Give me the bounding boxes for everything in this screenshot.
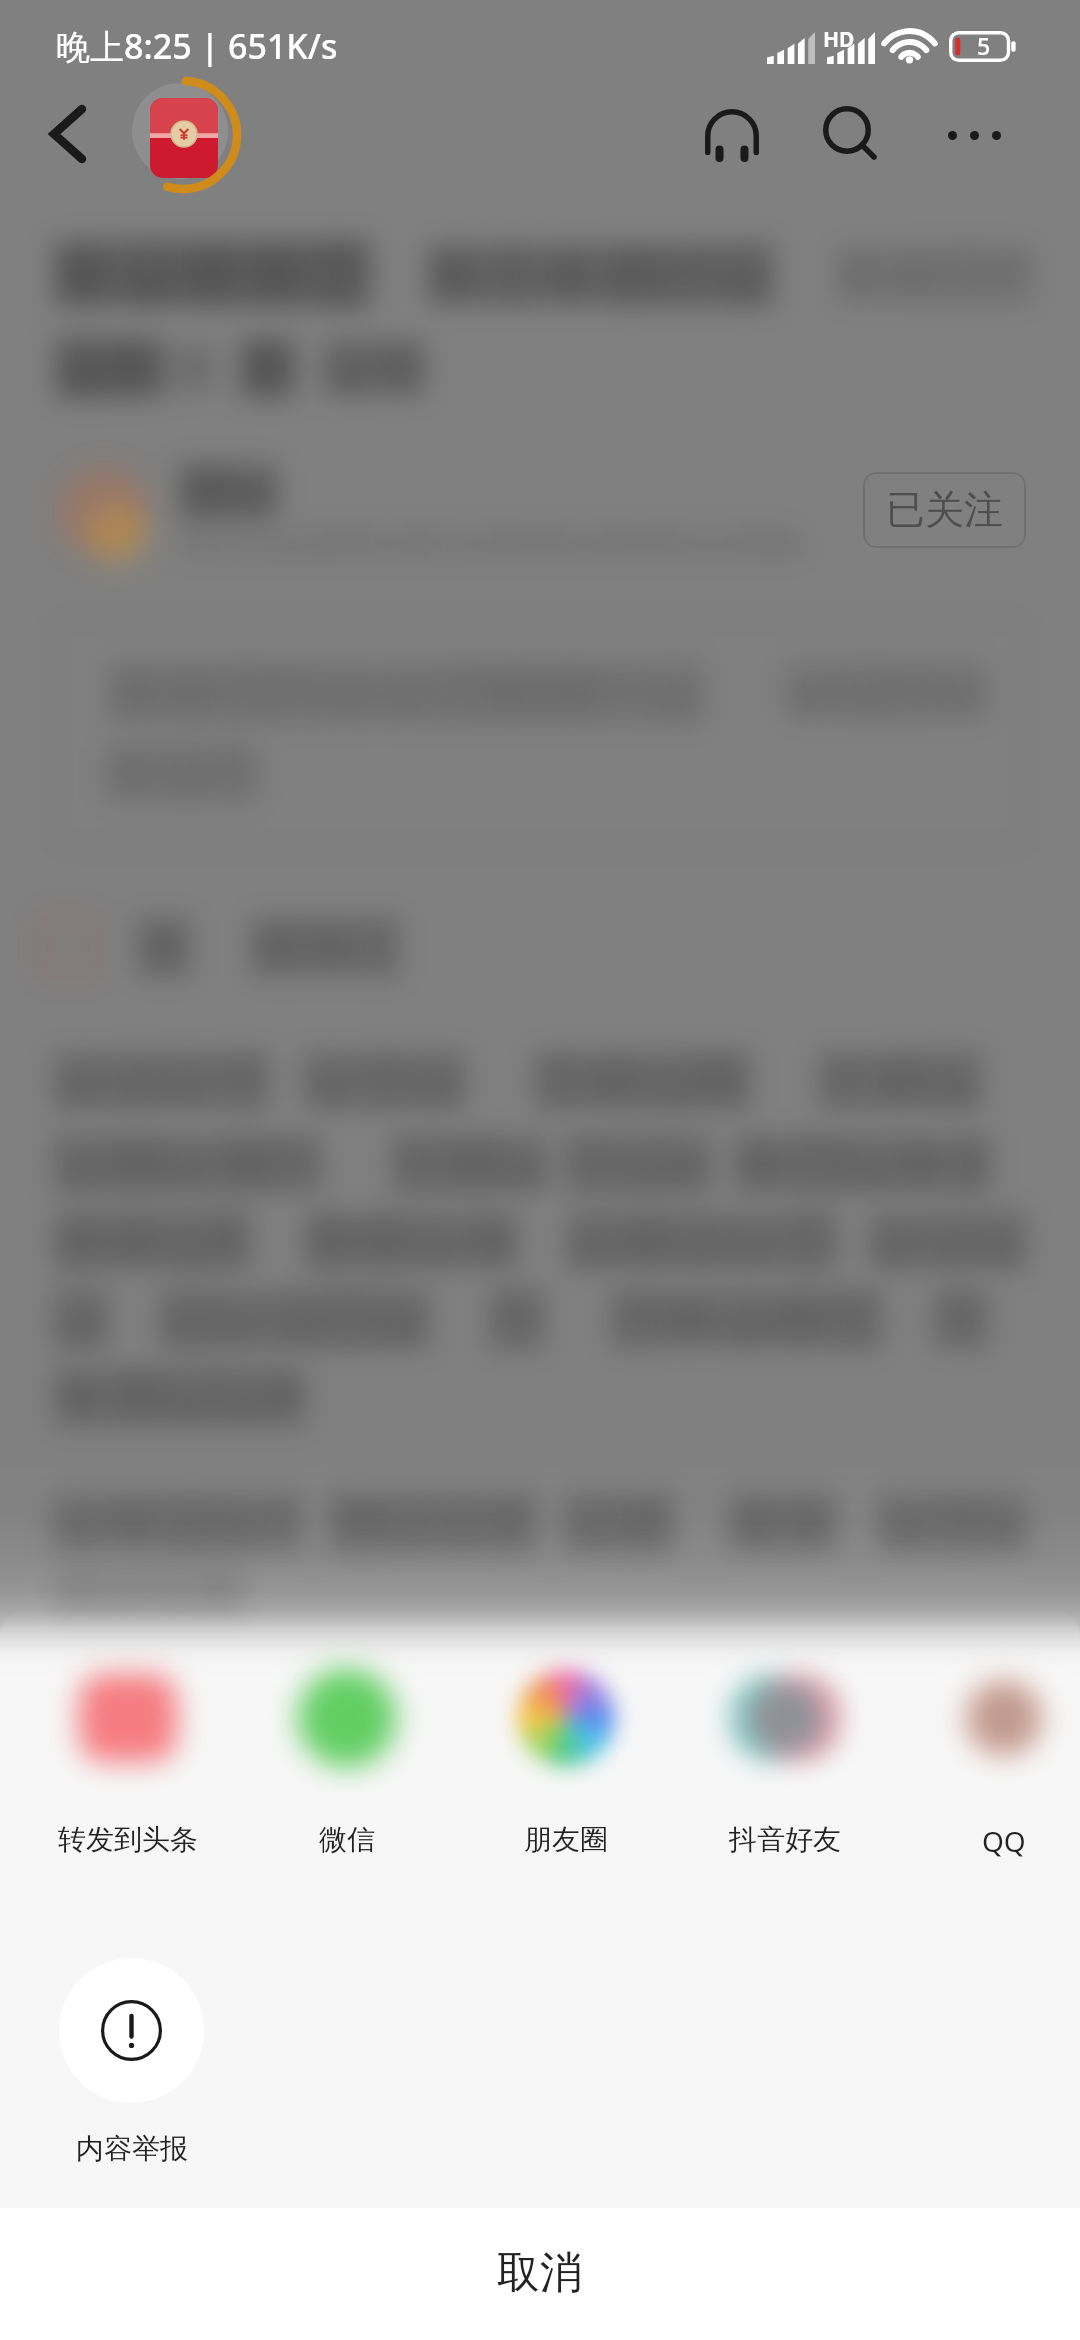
staticText: 内容举报 [76, 2131, 188, 2166]
button[interactable]: 取消 [0, 2208, 1080, 2340]
button[interactable]: Back [24, 90, 112, 178]
button[interactable]: 转发到头条 [23, 1664, 233, 1894]
staticText: HD [823, 25, 855, 54]
staticText: 朋友圈 [524, 1822, 608, 1857]
button[interactable]: Listen [688, 91, 776, 179]
staticText: 已关注 [886, 485, 1003, 534]
button[interactable]: 内容举报 [26, 1958, 236, 2188]
staticText: 取消 [497, 2246, 583, 2300]
staticText: QQ [982, 1822, 1026, 1860]
staticText: 转发到头条 [58, 1822, 198, 1857]
staticText: 5 [977, 30, 991, 61]
staticText: 抖音好友 [729, 1822, 841, 1857]
button[interactable]: Search [807, 90, 895, 178]
button[interactable]: Red packet reward [128, 84, 240, 196]
staticText: 微信 [319, 1822, 375, 1857]
staticText: 晚上8:25 | 651K/s [56, 23, 338, 69]
button[interactable]: 朋友圈 [461, 1664, 671, 1894]
button[interactable]: 抖音好友 [680, 1664, 890, 1894]
button[interactable]: QQ [899, 1664, 1080, 1894]
button[interactable]: 微信 [242, 1664, 452, 1894]
button[interactable]: 已关注 [863, 472, 1026, 548]
button[interactable]: More options [930, 91, 1018, 179]
